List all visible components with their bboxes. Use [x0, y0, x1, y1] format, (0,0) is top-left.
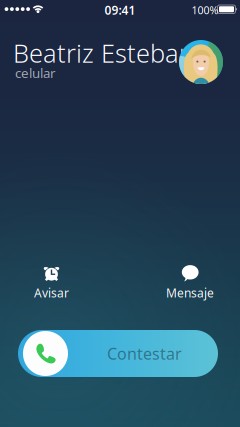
button[interactable]: Mensaje	[150, 264, 230, 300]
staticText: Beatriz Esteban	[13, 36, 194, 70]
staticText: 09:41	[104, 2, 135, 18]
staticText: Avisar	[34, 285, 69, 301]
button[interactable]: Contestar	[18, 330, 218, 377]
staticText: celular	[15, 64, 56, 82]
staticText: Contestar	[107, 343, 182, 364]
staticText: 100%	[191, 3, 218, 17]
button[interactable]: Avisar	[11, 264, 91, 300]
staticText: Mensaje	[166, 285, 214, 301]
